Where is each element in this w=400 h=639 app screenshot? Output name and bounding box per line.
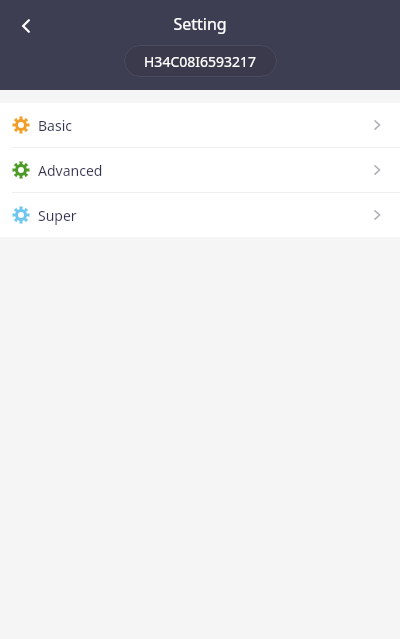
button[interactable]: Back (8, 8, 44, 44)
staticText: Setting (173, 13, 227, 35)
button[interactable]: Advanced (0, 148, 400, 192)
staticText: Advanced (38, 161, 103, 180)
button[interactable]: H34C08I6593217 (124, 45, 277, 77)
button[interactable]: Super (0, 193, 400, 237)
staticText: H34C08I6593217 (144, 52, 257, 71)
button[interactable]: Basic (0, 103, 400, 147)
staticText: Super (38, 206, 77, 225)
staticText: Basic (38, 116, 72, 135)
